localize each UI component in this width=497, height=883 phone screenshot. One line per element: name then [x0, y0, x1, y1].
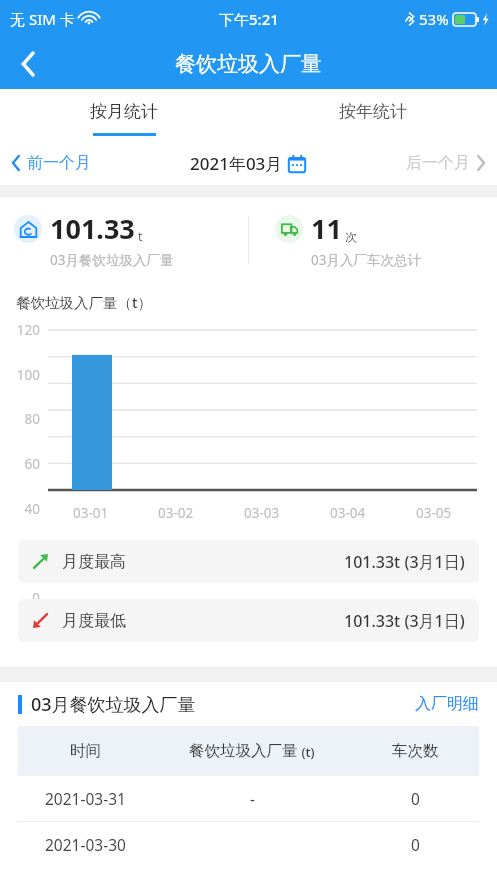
staticText: 入厂明细	[415, 694, 479, 714]
button[interactable]: 月度最低	[18, 599, 479, 642]
staticText: 120	[0, 321, 40, 339]
staticText: 餐饮垃圾入厂量	[175, 51, 322, 77]
staticText: 03月餐饮垃圾入厂量	[50, 251, 174, 269]
staticText: 20	[0, 544, 40, 562]
staticText: -	[250, 788, 255, 809]
staticText: 无 SIM 卡	[10, 9, 75, 29]
staticText: 后一个月	[406, 153, 470, 173]
staticText: 03月餐饮垃圾入厂量	[31, 692, 196, 717]
staticText: 0	[411, 834, 420, 855]
staticText: 车次数	[392, 741, 439, 761]
staticText: 0	[411, 788, 420, 809]
staticText: 53%	[419, 9, 449, 29]
button[interactable]: 前一个月	[0, 153, 91, 173]
button[interactable]: 2021年03月	[190, 152, 306, 175]
staticText: 80	[0, 410, 40, 428]
staticText: 2021-03-30	[45, 834, 126, 855]
staticText: 前一个月	[27, 153, 91, 173]
staticText: 03-01	[73, 504, 109, 522]
staticText: 月度最低	[62, 611, 126, 631]
staticText: 0	[0, 589, 40, 607]
staticText: 时间	[70, 741, 101, 761]
staticText: 次	[345, 229, 357, 244]
staticText: 60	[0, 455, 40, 473]
button[interactable]: 入厂明细	[415, 694, 479, 714]
staticText: 100	[0, 366, 40, 384]
staticText: 2021-03-31	[45, 788, 126, 809]
staticText: 2021年03月	[190, 152, 283, 175]
staticText: 101.33t (3月1日)	[344, 610, 465, 632]
staticText: 40	[0, 500, 40, 518]
staticText: t	[138, 228, 143, 244]
staticText: 按年统计	[339, 101, 407, 122]
staticText: 03-02	[158, 504, 194, 522]
staticText: 按月统计	[90, 101, 158, 122]
staticText: 03-05	[416, 504, 452, 522]
staticText: 11	[311, 210, 342, 247]
staticText: 03-04	[330, 504, 366, 522]
staticText: (t)	[298, 743, 315, 761]
staticText: 101.33t (3月1日)	[344, 551, 465, 573]
staticText: 03-03	[244, 504, 280, 522]
staticText: 101.33	[50, 210, 135, 247]
staticText: 餐饮垃圾入厂量（t）	[16, 292, 153, 312]
button[interactable]: Back	[0, 38, 56, 89]
staticText: 餐饮垃圾入厂量	[189, 741, 298, 761]
button[interactable]: 2021-03-31	[18, 776, 479, 821]
button[interactable]: 按年统计	[248, 89, 497, 141]
button[interactable]: 2021-03-30	[18, 822, 479, 867]
button[interactable]: 按月统计	[0, 89, 248, 141]
staticText: 下午5:21	[219, 9, 279, 29]
staticText: 月度最高	[62, 552, 126, 572]
button[interactable]: 后一个月	[406, 153, 497, 173]
button[interactable]: 月度最高	[18, 540, 479, 583]
staticText: 03月入厂车次总计	[311, 251, 421, 269]
